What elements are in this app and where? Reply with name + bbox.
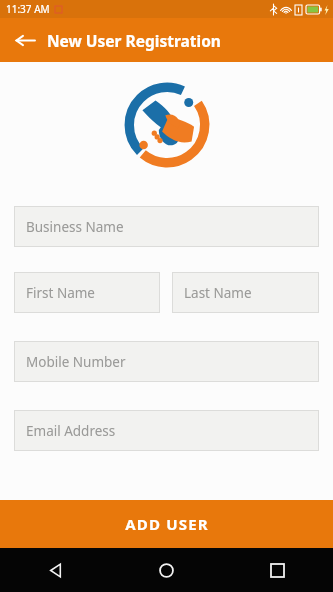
- staticText: New User Registration: [47, 30, 221, 51]
- button[interactable]: Business Name: [14, 206, 319, 247]
- staticText: First Name: [26, 284, 95, 302]
- staticText: Mobile Number: [26, 353, 126, 371]
- staticText: Last Name: [184, 284, 252, 302]
- button[interactable]: First Name: [14, 272, 160, 313]
- button[interactable]: Email Address: [14, 410, 319, 451]
- button[interactable]: Back: [0, 548, 111, 592]
- staticText: ADD USER: [125, 514, 209, 534]
- button[interactable]: Back: [8, 23, 42, 57]
- button[interactable]: Recent apps: [222, 548, 333, 592]
- staticText: Email Address: [26, 422, 116, 440]
- button[interactable]: ADD USER: [0, 500, 333, 548]
- staticText: 11:37 AM: [6, 2, 50, 16]
- button[interactable]: Last Name: [172, 272, 319, 313]
- button[interactable]: Mobile Number: [14, 341, 319, 382]
- staticText: Business Name: [26, 218, 124, 236]
- button[interactable]: Home: [111, 548, 222, 592]
